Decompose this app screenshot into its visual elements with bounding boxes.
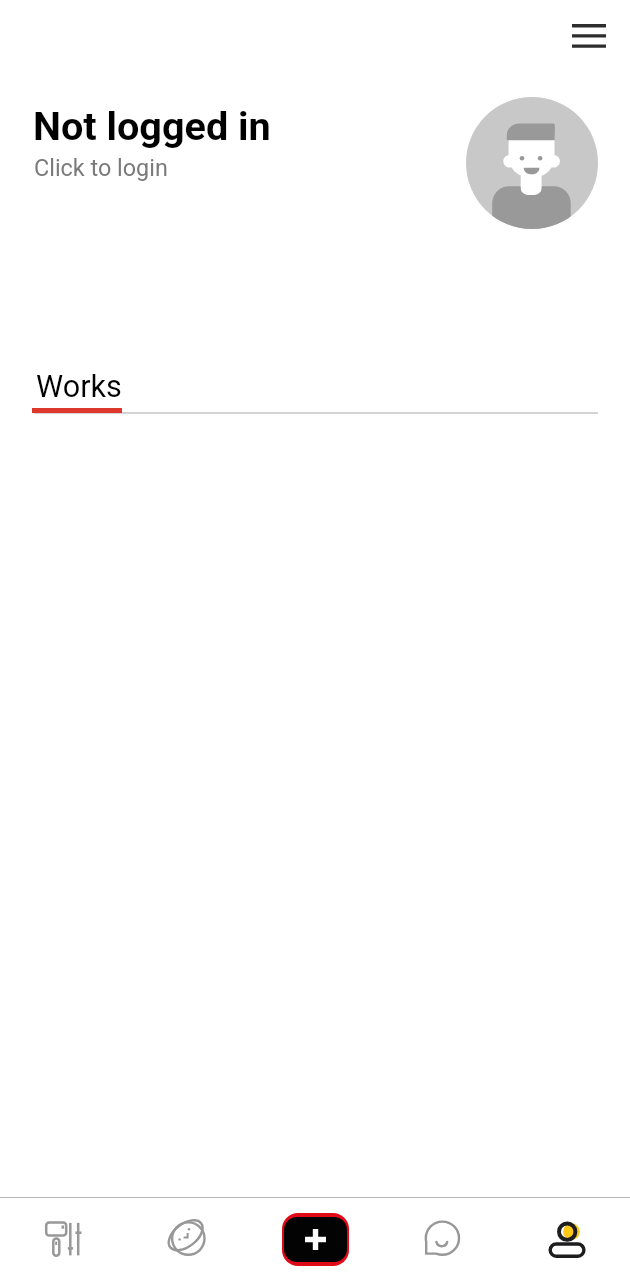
staticText: Click to login bbox=[34, 154, 168, 181]
button[interactable]: Add bbox=[284, 1217, 347, 1262]
button[interactable]: Messages bbox=[378, 1198, 504, 1280]
button[interactable]: Tools bbox=[0, 1198, 126, 1280]
button[interactable]: Explore bbox=[126, 1198, 252, 1280]
button[interactable]: Works bbox=[32, 362, 122, 413]
button[interactable]: Menu bbox=[561, 8, 617, 64]
button[interactable]: Not logged in bbox=[0, 85, 630, 235]
staticText: Works bbox=[36, 369, 122, 405]
staticText: Not logged in bbox=[33, 103, 271, 149]
button[interactable]: Profile bbox=[504, 1198, 630, 1280]
